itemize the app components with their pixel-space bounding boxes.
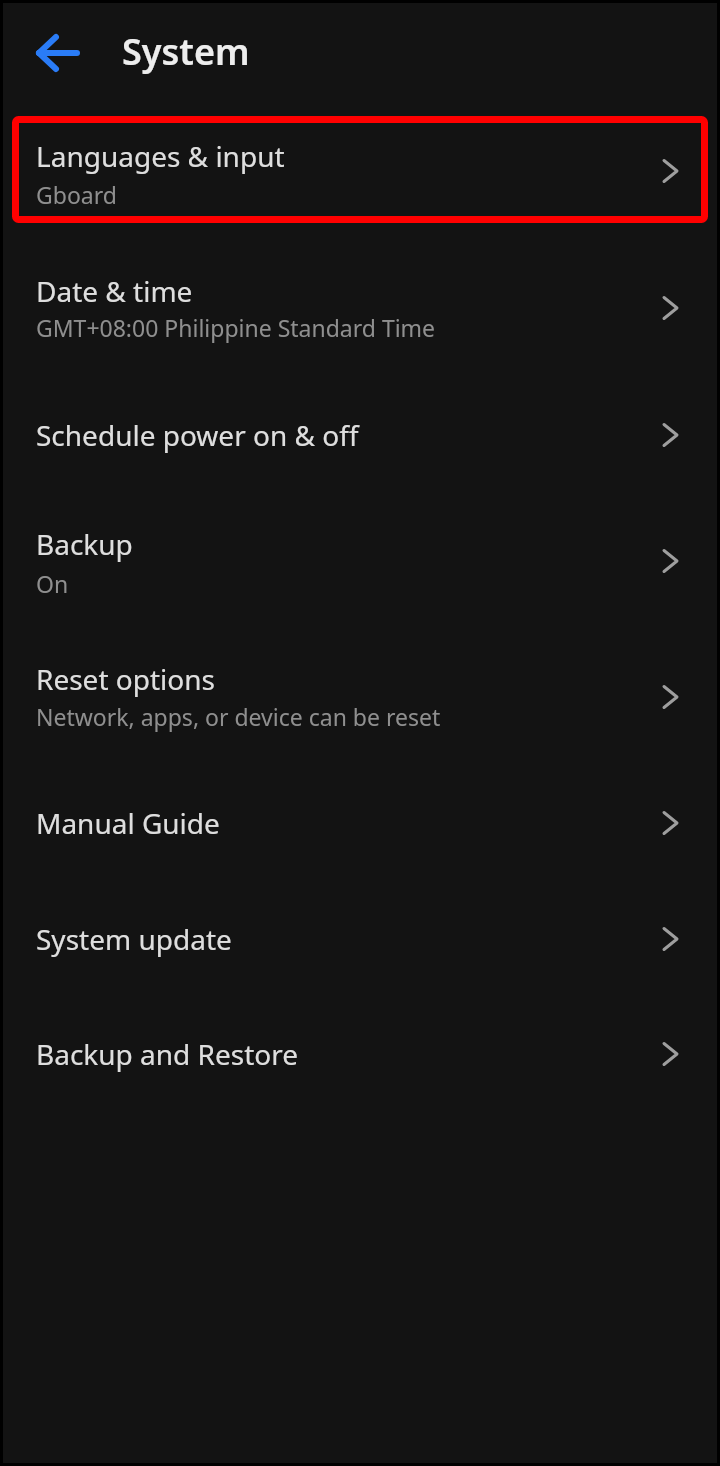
staticText: Backup: [36, 525, 133, 563]
button[interactable]: Schedule power on & off: [3, 376, 717, 496]
button[interactable]: System update: [3, 884, 717, 1000]
button[interactable]: Backup and Restore: [3, 1000, 717, 1115]
staticText: On: [36, 568, 69, 599]
staticText: Schedule power on & off: [36, 416, 359, 454]
button[interactable]: Manual Guide: [3, 768, 717, 884]
staticText: Network, apps, or device can be reset: [36, 701, 441, 732]
staticText: Gboard: [36, 179, 117, 210]
button[interactable]: Reset options: [3, 630, 717, 768]
staticText: System: [122, 27, 250, 76]
button[interactable]: Date & time: [3, 237, 717, 376]
button[interactable]: Backup: [3, 496, 717, 630]
staticText: Languages & input: [36, 137, 285, 175]
button[interactable]: [27, 22, 89, 84]
staticText: Manual Guide: [36, 804, 220, 842]
button[interactable]: Languages & input: [3, 113, 717, 237]
staticText: System update: [36, 920, 232, 958]
staticText: Backup and Restore: [36, 1035, 299, 1073]
staticText: Reset options: [36, 660, 215, 698]
staticText: Date & time: [36, 272, 193, 310]
staticText: GMT+08:00 Philippine Standard Time: [36, 312, 436, 343]
